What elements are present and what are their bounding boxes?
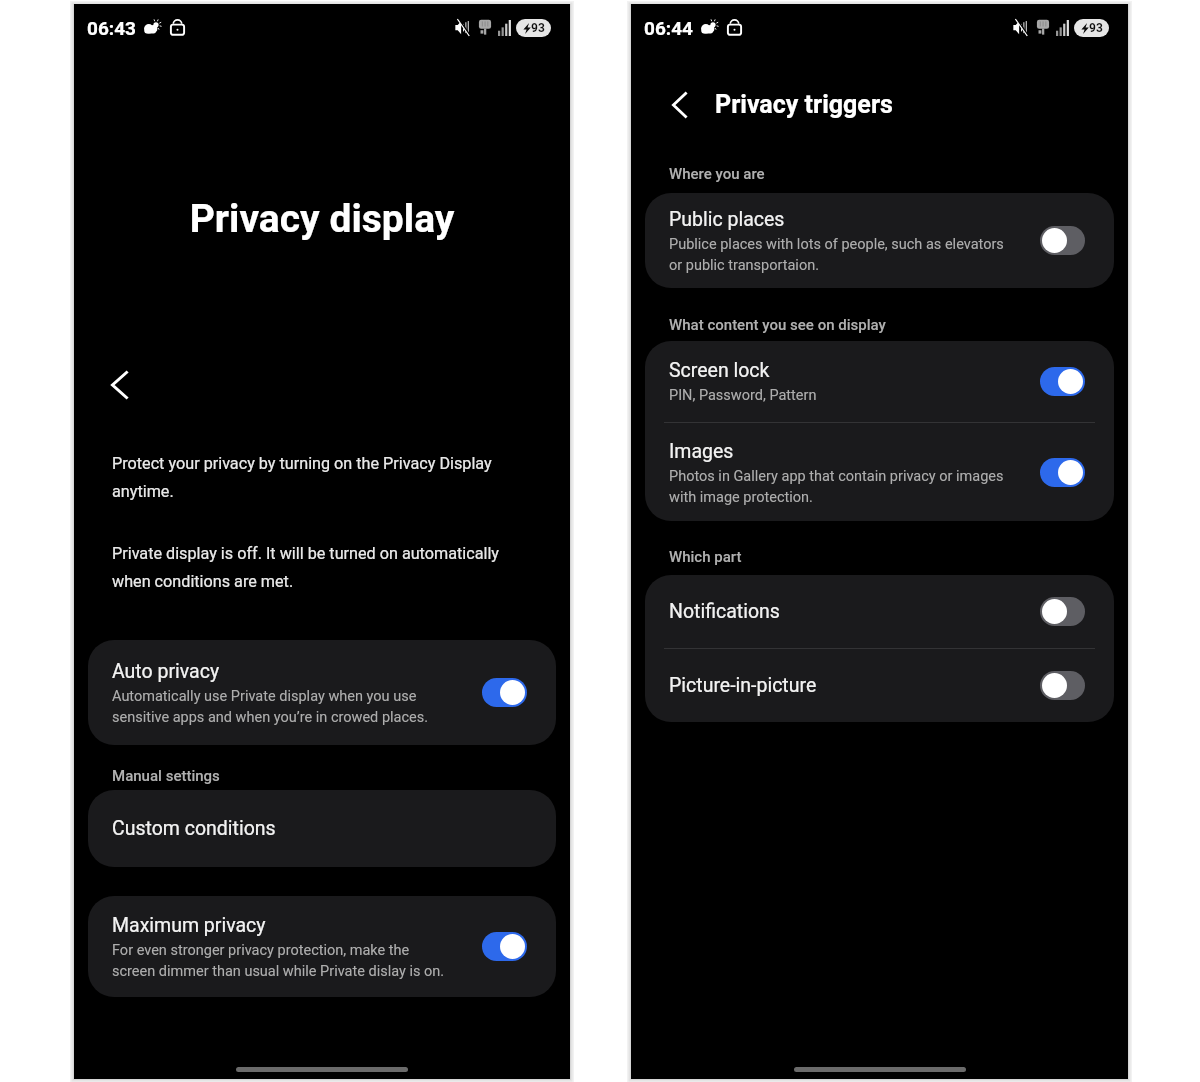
button[interactable]: Picture-in-picture	[645, 649, 1114, 722]
staticText: Public places	[669, 208, 785, 231]
staticText: For even stronger privacy protection, ma…	[112, 942, 445, 979]
button[interactable]: Screen lock	[645, 341, 1114, 422]
staticText: 93	[531, 21, 545, 35]
button[interactable]: Switch off	[1040, 597, 1085, 626]
staticText: Maximum privacy	[112, 914, 266, 937]
button[interactable]: Custom conditions	[88, 790, 556, 867]
button[interactable]: Back	[111, 371, 128, 399]
staticText: Custom conditions	[112, 817, 276, 840]
button[interactable]: Switch on	[1040, 367, 1085, 396]
staticText: 93	[1089, 21, 1103, 35]
staticText: Publice places with lots of people, such…	[669, 236, 1004, 273]
staticText: Screen lock	[669, 359, 770, 382]
staticText: Automatically use Private display when y…	[112, 688, 429, 725]
staticText: 06:43	[87, 17, 136, 39]
button[interactable]: Notifications	[645, 575, 1114, 648]
staticText: Private display is off. It will be turne…	[112, 544, 500, 591]
button[interactable]: Back	[672, 92, 687, 118]
staticText: PIN, Password, Pattern	[669, 387, 817, 404]
button[interactable]: Switch on	[482, 932, 527, 961]
button[interactable]: Maximum privacy	[88, 896, 556, 997]
staticText: Privacy display	[74, 196, 570, 242]
staticText: Images	[669, 440, 734, 463]
button[interactable]: Switch off	[1040, 671, 1085, 700]
staticText: Privacy triggers	[715, 90, 893, 119]
staticText: Auto privacy	[112, 660, 220, 683]
staticText: 06:44	[644, 17, 693, 39]
staticText: Notifications	[669, 600, 780, 623]
button[interactable]: Switch on	[482, 678, 527, 707]
staticText: Protect your privacy by turning on the P…	[112, 454, 492, 501]
staticText: Where you are	[669, 165, 765, 183]
button[interactable]: Switch on	[1040, 458, 1085, 487]
staticText: Picture-in-picture	[669, 674, 817, 697]
staticText: Which part	[669, 548, 742, 566]
button[interactable]: Public places	[645, 193, 1114, 288]
staticText: Photos in Gallery app that contain priva…	[669, 468, 1004, 505]
staticText: What content you see on display	[669, 316, 886, 334]
staticText: Manual settings	[112, 767, 220, 785]
button[interactable]: Auto privacy	[88, 640, 556, 745]
button[interactable]: Images	[645, 423, 1114, 521]
button[interactable]: Switch off	[1040, 226, 1085, 255]
